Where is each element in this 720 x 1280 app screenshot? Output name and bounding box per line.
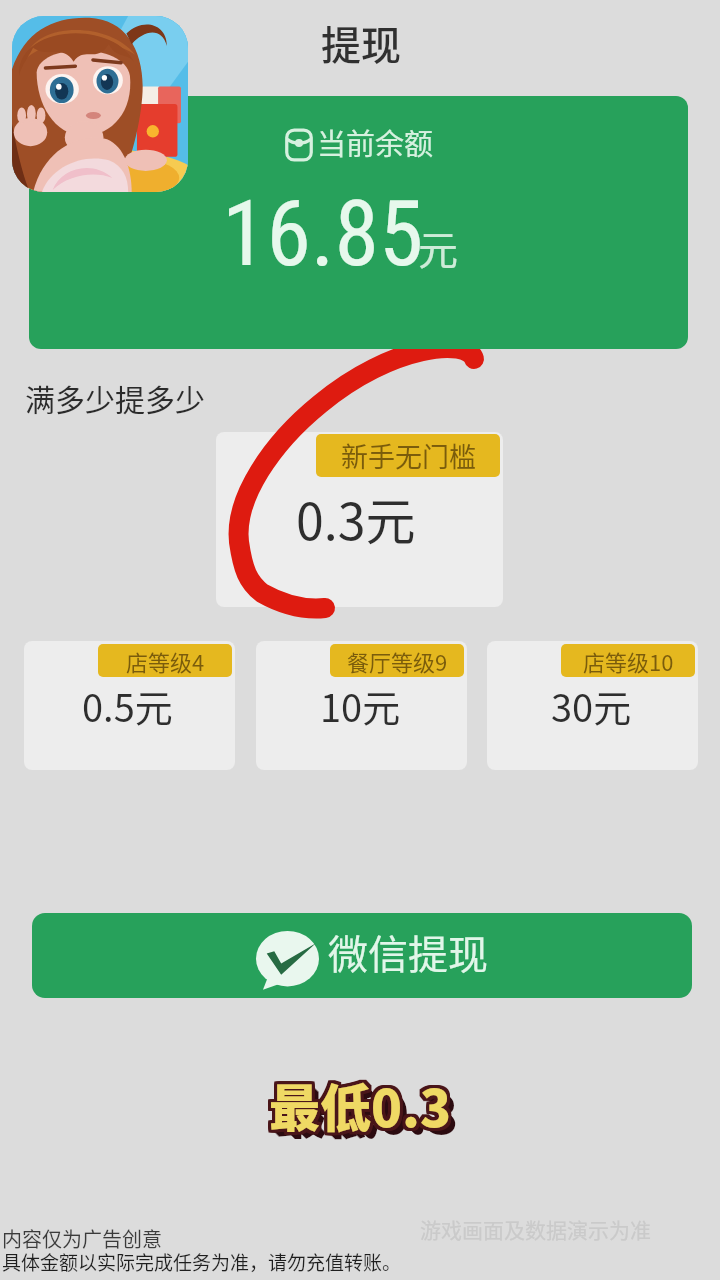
staticText: 最低0.3 (266, 1066, 449, 1140)
staticText: 最低0.3 (266, 1069, 449, 1143)
staticText: 当前余额 (317, 121, 434, 163)
staticText: 最低0.3 (271, 1069, 454, 1143)
button[interactable] (29, 96, 688, 349)
staticText: 最低0.3 (272, 1071, 455, 1145)
staticText: 最低0.3 (267, 1068, 450, 1142)
staticText: 最低0.3 (268, 1065, 451, 1139)
staticText: 0.3元 (296, 482, 416, 554)
staticText: 最低0.3 (272, 1066, 455, 1140)
staticText: 微信提现 (328, 923, 488, 981)
staticText: 最低0.3 (269, 1066, 452, 1140)
staticText: 最低0.3 (266, 1071, 449, 1145)
staticText: 最低0.3 (269, 1070, 452, 1144)
staticText: 最低0.3 (271, 1065, 454, 1139)
staticText: 最低0.3 (269, 1071, 452, 1145)
staticText: 满多少提多少 (25, 376, 205, 419)
staticText: 0.5元 (82, 678, 173, 733)
staticText: 内容仅为广告创意 (2, 1224, 162, 1253)
button[interactable]: 新手无门槛 (216, 432, 503, 607)
staticText: 16.85 (222, 182, 424, 287)
staticText: 最低0.3 (270, 1065, 453, 1139)
staticText: 最低0.3 (274, 1073, 457, 1147)
staticText: 最低0.3 (275, 1074, 458, 1148)
staticText: 最低0.3 (267, 1067, 450, 1141)
staticText: 10元 (320, 678, 401, 733)
staticText: 最低0.3 (269, 1068, 452, 1142)
staticText: 最低0.3 (266, 1065, 449, 1139)
staticText: 店等级10 (583, 645, 674, 677)
staticText: 最低0.3 (267, 1069, 450, 1143)
staticText: 最低0.3 (272, 1065, 455, 1139)
staticText: 最低0.3 (270, 1070, 453, 1144)
staticText: 最低0.3 (271, 1071, 454, 1145)
staticText: 最低0.3 (270, 1066, 453, 1140)
staticText: 最低0.3 (276, 1075, 459, 1149)
staticText: 游戏画面及数据演示为准 (420, 1214, 651, 1244)
staticText: 最低0.3 (273, 1072, 456, 1146)
staticText: 最低0.3 (266, 1068, 449, 1142)
staticText: 最低0.3 (268, 1066, 451, 1140)
button[interactable] (32, 913, 692, 998)
staticText: 最低0.3 (266, 1067, 449, 1141)
staticText: 最低0.3 (271, 1070, 454, 1144)
staticText: 最低0.3 (267, 1065, 450, 1139)
staticText: 最低0.3 (271, 1068, 454, 1142)
staticText: 最低0.3 (272, 1069, 455, 1143)
staticText: 最低0.3 (267, 1071, 450, 1145)
staticText: 最低0.3 (267, 1070, 450, 1144)
button[interactable]: 餐厅等级9 (256, 641, 467, 770)
staticText: 具体金额以实际完成任务为准，请勿充值转账。 (2, 1248, 402, 1276)
staticText: 最低0.3 (272, 1071, 455, 1145)
staticText: 最低0.3 (268, 1070, 451, 1144)
staticText: 最低0.3 (272, 1068, 455, 1142)
staticText: 最低0.3 (272, 1067, 455, 1141)
staticText: 最低0.3 (266, 1070, 449, 1144)
staticText: 最低0.3 (272, 1070, 455, 1144)
button[interactable]: 店等级4 (24, 641, 235, 770)
staticText: 最低0.3 (268, 1071, 451, 1145)
staticText: 最低0.3 (271, 1066, 454, 1140)
button[interactable]: 店等级10 (487, 641, 698, 770)
staticText: 30元 (551, 678, 632, 733)
staticText: 元 (418, 219, 458, 277)
staticText: 新手无门槛 (341, 436, 476, 475)
staticText: 最低0.3 (267, 1066, 450, 1140)
staticText: 店等级4 (126, 645, 205, 677)
staticText: 餐厅等级9 (347, 645, 448, 677)
other: App icon (12, 16, 188, 192)
staticText: 最低0.3 (269, 1065, 452, 1139)
staticText: 最低0.3 (270, 1071, 453, 1145)
staticText: 提现 (321, 14, 401, 72)
staticText: 最低0.3 (271, 1067, 454, 1141)
